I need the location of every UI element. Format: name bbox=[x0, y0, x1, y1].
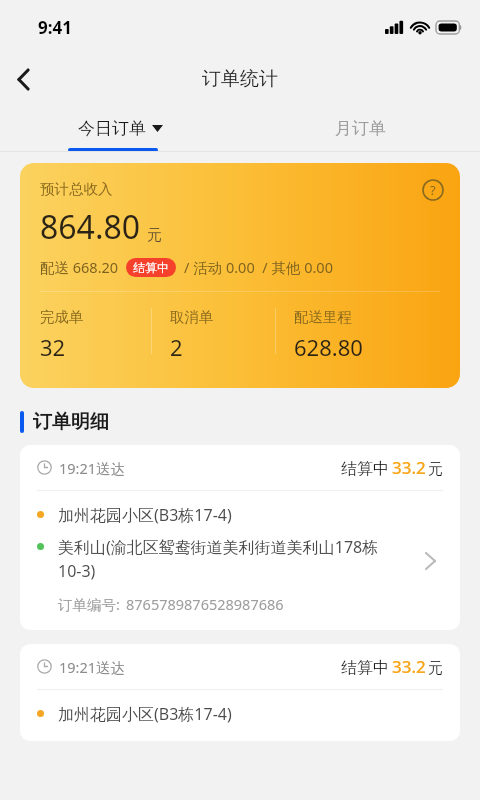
button[interactable]: 今日订单 bbox=[78, 118, 163, 139]
other: Order details bbox=[420, 551, 440, 571]
staticText: 19:21送达 bbox=[59, 458, 126, 478]
button[interactable]: 预计总收入 bbox=[20, 163, 460, 388]
staticText: 今日订单 bbox=[78, 118, 146, 139]
staticText: 加州花园小区(B3栋17-4) bbox=[58, 504, 232, 526]
staticText: 864.80 bbox=[40, 205, 141, 249]
button[interactable]: 19:21送达 bbox=[20, 644, 460, 741]
button[interactable]: Help bbox=[414, 171, 452, 209]
staticText: 完成单 bbox=[40, 308, 84, 326]
button[interactable]: 月订单 bbox=[240, 104, 480, 152]
staticText: ? bbox=[430, 181, 436, 199]
staticText: 8765789876528987686 bbox=[126, 594, 284, 614]
button[interactable]: Back bbox=[0, 56, 46, 102]
staticText: 19:21送达 bbox=[59, 657, 126, 677]
staticText: 订单明细 bbox=[33, 410, 109, 434]
staticText: 元 bbox=[428, 460, 443, 479]
staticText: 32 bbox=[40, 332, 66, 362]
button[interactable]: 19:21送达 bbox=[20, 445, 460, 630]
staticText: 配送里程 bbox=[294, 308, 352, 326]
staticText: 结算中 bbox=[341, 658, 389, 678]
staticText: 628.80 bbox=[294, 332, 363, 362]
staticText: 月订单 bbox=[335, 118, 386, 139]
staticText: 订单统计 bbox=[202, 67, 278, 91]
staticText: 33.2 bbox=[392, 456, 426, 479]
staticText: 美利山(渝北区鸳鸯街道美利街道美利山178栋10-3) bbox=[58, 536, 412, 582]
staticText: 结算中 bbox=[133, 260, 169, 275]
staticText: 取消单 bbox=[170, 308, 214, 326]
staticText: 订单编号: bbox=[58, 594, 120, 614]
staticText: 加州花园小区(B3栋17-4) bbox=[58, 703, 232, 725]
staticText: 预计总收入 bbox=[40, 180, 113, 198]
staticText: / 活动 0.00 / 其他 0.00 bbox=[184, 257, 333, 277]
staticText: 结算中 bbox=[341, 459, 389, 479]
staticText: 配送 668.20 bbox=[40, 257, 119, 277]
staticText: 33.2 bbox=[392, 655, 426, 678]
staticText: 元 bbox=[428, 659, 443, 678]
staticText: 2 bbox=[170, 332, 183, 362]
staticText: 9:41 bbox=[38, 16, 72, 39]
staticText: 元 bbox=[147, 226, 162, 245]
